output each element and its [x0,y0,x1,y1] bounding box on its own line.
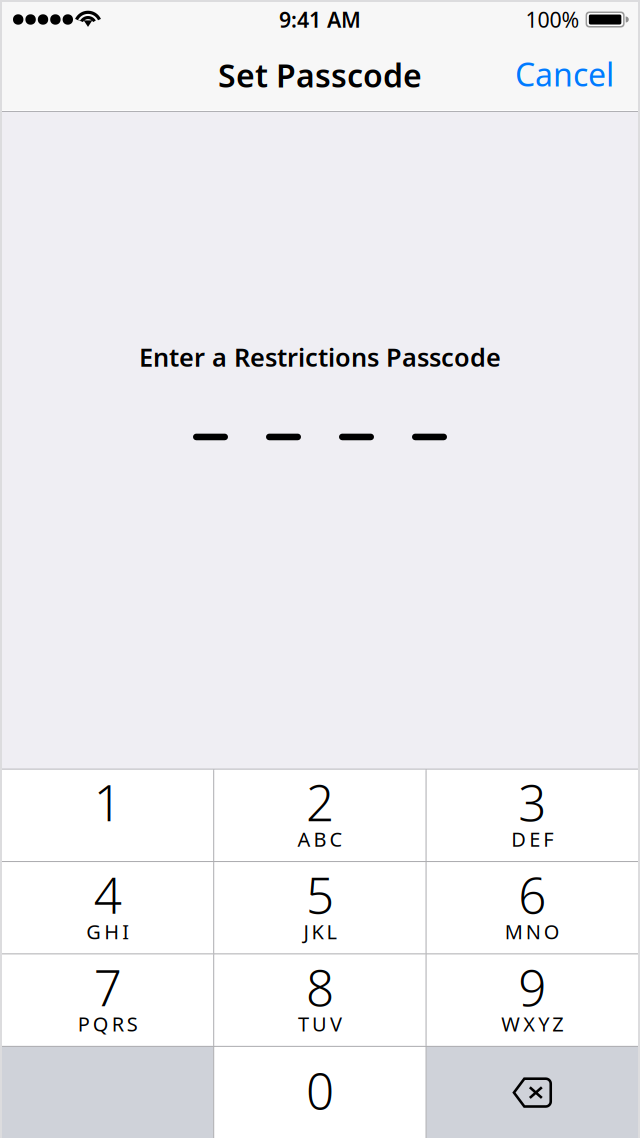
staticText: Set Passcode [218,54,422,96]
staticText: 7 [94,954,122,1020]
button[interactable]: 6 [427,862,638,953]
staticText: 9 [518,954,546,1020]
staticText: PQRS [78,1010,138,1037]
staticText: 2 [306,769,334,835]
staticText: 0 [306,1058,334,1123]
staticText: WXYZ [501,1010,563,1037]
button[interactable]: 2 [214,770,426,861]
staticText: 1 [94,769,122,835]
staticText: 3 [518,769,546,835]
staticText: ABC [297,826,342,852]
button[interactable]: 8 [214,954,426,1046]
staticText: MNO [505,918,560,945]
button[interactable]: 9 [427,954,638,1046]
staticText: 8 [306,954,334,1020]
button[interactable]: 7 [2,954,213,1046]
staticText: 5 [306,862,334,927]
staticText: Enter a Restrictions Passcode [139,340,501,374]
button[interactable]: 4 [2,862,213,953]
staticText: TUV [298,1010,342,1037]
button[interactable]: 1 [2,770,213,861]
staticText: 100% [526,5,580,34]
button[interactable]: Cancel [501,43,628,111]
button[interactable]: 3 [427,770,638,861]
button[interactable]: 5 [214,862,426,953]
staticText: DEF [511,826,553,852]
staticText: 9:41 AM [279,5,361,34]
staticText: GHI [86,918,129,945]
staticText: 6 [518,862,546,927]
button[interactable]: 0 [214,1047,426,1138]
staticText: 4 [94,862,122,927]
staticText: Cancel [515,53,614,95]
staticText: JKL [303,918,336,945]
button[interactable]: Delete [427,1047,638,1138]
